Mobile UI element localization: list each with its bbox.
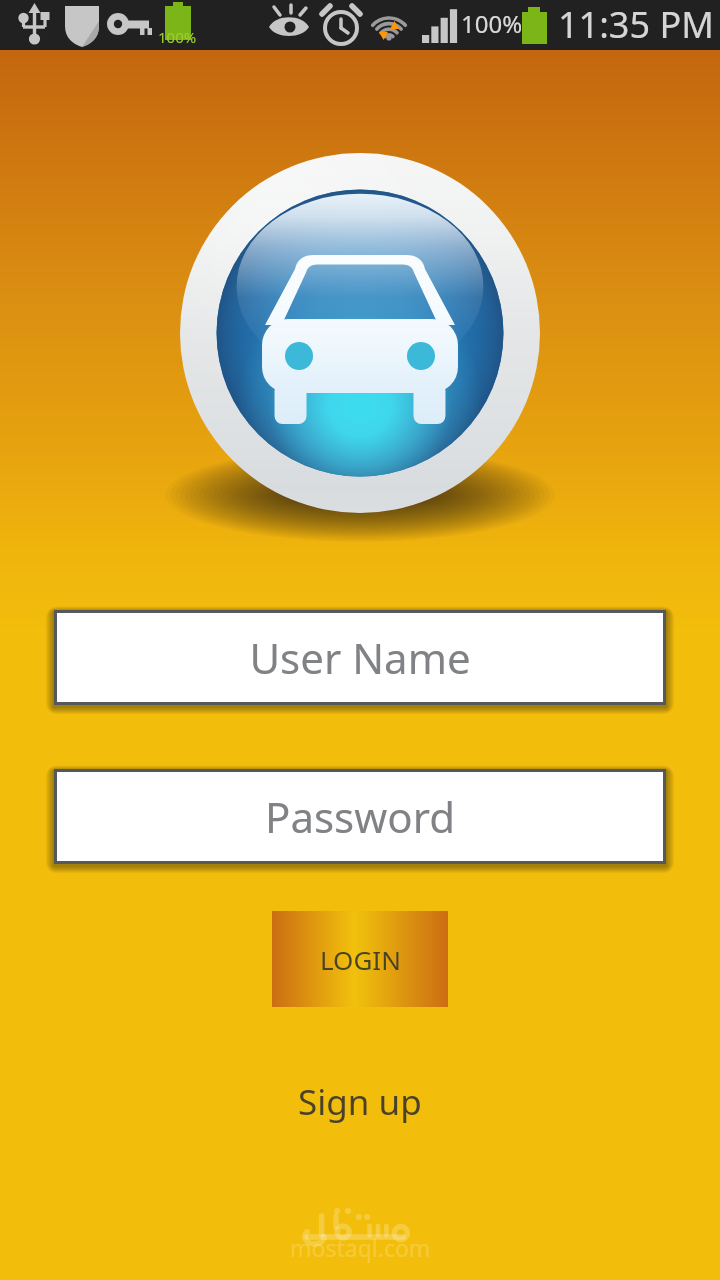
staticText: 100% bbox=[461, 7, 523, 40]
staticText: 11:35 PM bbox=[558, 0, 714, 49]
button[interactable]: Sign up bbox=[282, 1070, 438, 1134]
staticText: Password bbox=[265, 788, 455, 845]
button[interactable]: User Name bbox=[54, 610, 666, 705]
staticText: User Name bbox=[249, 629, 471, 686]
staticText: 100% bbox=[158, 27, 197, 47]
staticText: mostaql.com bbox=[290, 1232, 431, 1263]
staticText: LOGIN bbox=[320, 942, 401, 977]
button[interactable]: Password bbox=[54, 769, 666, 864]
button[interactable]: LOGIN bbox=[272, 911, 448, 1007]
